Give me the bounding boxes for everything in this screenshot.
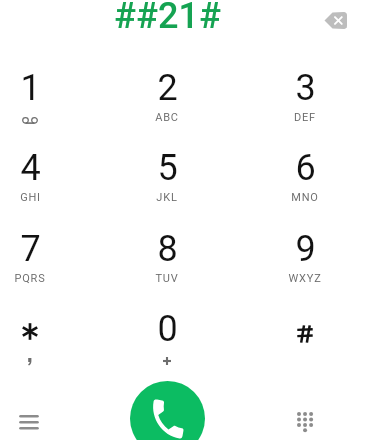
staticText: TUV bbox=[155, 272, 179, 285]
staticText: MNO bbox=[291, 191, 319, 204]
staticText: DEF bbox=[294, 111, 316, 124]
button[interactable]: Dialpad bbox=[288, 404, 322, 440]
staticText: 0 bbox=[157, 308, 178, 350]
button[interactable]: 0 bbox=[112, 308, 222, 388]
button[interactable]: 3 bbox=[250, 67, 360, 147]
button[interactable]: 2 bbox=[112, 67, 222, 147]
staticText: 4 bbox=[20, 147, 41, 189]
staticText: 3 bbox=[295, 67, 316, 109]
staticText: PQRS bbox=[14, 272, 46, 285]
staticText: 2 bbox=[157, 67, 178, 109]
button[interactable] bbox=[0, 308, 85, 388]
button[interactable]: 6 bbox=[250, 147, 360, 227]
button[interactable]: Call bbox=[130, 381, 205, 440]
button[interactable]: 1 bbox=[0, 67, 85, 147]
staticText: ##21# bbox=[114, 0, 221, 37]
button[interactable]: Menu bbox=[12, 404, 46, 440]
staticText: GHI bbox=[20, 191, 41, 204]
button[interactable] bbox=[250, 308, 360, 388]
staticText: ABC bbox=[155, 111, 179, 124]
button[interactable]: 9 bbox=[250, 228, 360, 308]
button[interactable]: Backspace bbox=[318, 5, 352, 35]
button[interactable]: 5 bbox=[112, 147, 222, 227]
staticText: 6 bbox=[295, 147, 316, 189]
button[interactable]: 8 bbox=[112, 228, 222, 308]
staticText: JKL bbox=[156, 191, 178, 204]
staticText: 9 bbox=[295, 228, 316, 270]
staticText: 8 bbox=[157, 228, 178, 270]
button[interactable]: 4 bbox=[0, 147, 85, 227]
staticText: 5 bbox=[157, 147, 178, 189]
staticText: 1 bbox=[20, 67, 41, 109]
button[interactable]: 7 bbox=[0, 228, 85, 308]
staticText: 7 bbox=[20, 228, 41, 270]
staticText: WXYZ bbox=[288, 272, 322, 285]
